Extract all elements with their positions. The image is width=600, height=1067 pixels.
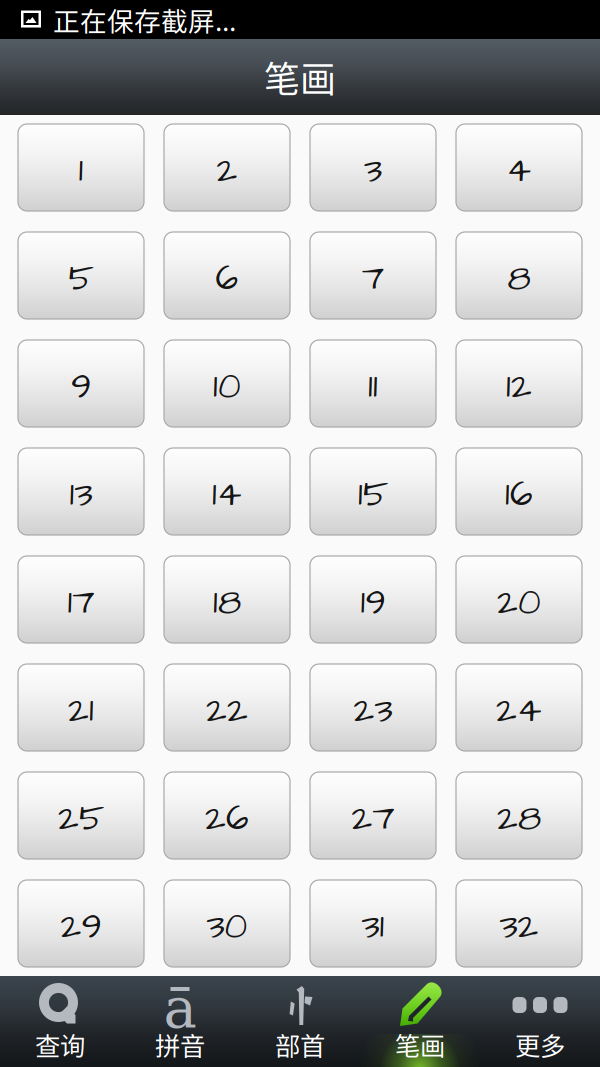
staticText: 12 — [506, 361, 532, 411]
button[interactable]: 11 — [310, 340, 436, 427]
staticText: 4 — [506, 145, 531, 195]
button[interactable]: 更多 — [480, 976, 600, 1067]
button[interactable]: 28 — [456, 772, 582, 859]
button[interactable]: 32 — [456, 880, 582, 967]
button[interactable]: 部首 — [240, 976, 360, 1067]
staticText: 24 — [496, 685, 542, 735]
staticText: 29 — [60, 901, 101, 951]
button[interactable]: 7 — [310, 232, 436, 319]
staticText: 22 — [206, 685, 248, 735]
button[interactable]: 10 — [164, 340, 290, 427]
staticText: 正在保存截屏... — [53, 0, 236, 39]
button[interactable]: 25 — [18, 772, 144, 859]
button[interactable]: 3 — [310, 124, 436, 211]
button[interactable]: 31 — [310, 880, 436, 967]
staticText: 23 — [353, 685, 392, 735]
staticText: 25 — [58, 793, 104, 843]
staticText: 更多 — [515, 1026, 565, 1063]
staticText: 7 — [362, 253, 384, 303]
staticText: 19 — [360, 577, 385, 627]
button[interactable]: 4 — [456, 124, 582, 211]
staticText: 8 — [507, 253, 530, 303]
button[interactable]: 29 — [18, 880, 144, 967]
button[interactable]: 21 — [18, 664, 144, 751]
staticText: 6 — [215, 253, 238, 303]
button[interactable]: 查询 — [0, 976, 120, 1067]
button[interactable]: 20 — [456, 556, 582, 643]
staticText: 32 — [499, 901, 538, 951]
button[interactable]: 19 — [310, 556, 436, 643]
staticText: 16 — [505, 469, 533, 519]
staticText: 3 — [364, 145, 382, 195]
button[interactable]: 27 — [310, 772, 436, 859]
staticText: 9 — [71, 361, 91, 411]
staticText: 30 — [206, 901, 247, 951]
button[interactable]: 23 — [310, 664, 436, 751]
button[interactable]: 17 — [18, 556, 144, 643]
button[interactable]: 12 — [456, 340, 582, 427]
staticText: 26 — [205, 793, 249, 843]
button[interactable]: 5 — [18, 232, 144, 319]
button[interactable]: 26 — [164, 772, 290, 859]
button[interactable]: 2 — [164, 124, 290, 211]
button[interactable]: 9 — [18, 340, 144, 427]
staticText: 2 — [216, 145, 237, 195]
staticText: 笔画 — [264, 51, 336, 103]
staticText: 查询 — [35, 1026, 85, 1063]
staticText: 28 — [497, 793, 541, 843]
staticText: 14 — [212, 469, 242, 519]
button[interactable]: 1 — [18, 124, 144, 211]
staticText: 17 — [67, 577, 94, 627]
button[interactable]: 30 — [164, 880, 290, 967]
button[interactable]: 8 — [456, 232, 582, 319]
staticText: 1 — [78, 145, 83, 195]
button[interactable]: 13 — [18, 448, 144, 535]
button[interactable]: 22 — [164, 664, 290, 751]
staticText: 18 — [213, 577, 241, 627]
button[interactable]: 18 — [164, 556, 290, 643]
staticText: 10 — [213, 361, 241, 411]
staticText: 20 — [497, 577, 541, 627]
button[interactable]: a — [120, 976, 240, 1067]
staticText: 拼音 — [155, 1026, 205, 1063]
staticText: 15 — [358, 469, 388, 519]
button[interactable]: 16 — [456, 448, 582, 535]
staticText: 5 — [68, 253, 93, 303]
staticText: 11 — [368, 361, 378, 411]
button[interactable]: 6 — [164, 232, 290, 319]
staticText: 21 — [68, 685, 94, 735]
button[interactable]: 24 — [456, 664, 582, 751]
button[interactable]: 笔画 — [360, 976, 480, 1067]
staticText: 13 — [69, 469, 92, 519]
staticText: 部首 — [275, 1026, 325, 1063]
button[interactable]: 15 — [310, 448, 436, 535]
staticText: 笔画 — [395, 1026, 445, 1063]
staticText: 31 — [361, 901, 384, 951]
staticText: 27 — [351, 793, 394, 843]
button[interactable]: 14 — [164, 448, 290, 535]
staticText: a — [163, 975, 196, 1041]
